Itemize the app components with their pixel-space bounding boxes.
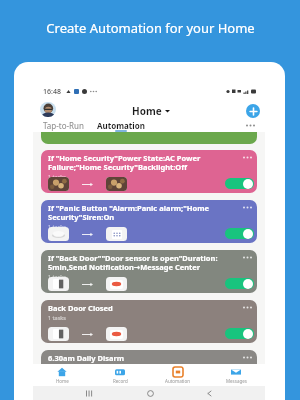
button[interactable]: If "Home Security"Power State:AC Power F… — [41, 150, 257, 193]
button[interactable]: More options — [243, 206, 252, 209]
staticText: If "Back Door""Door sensor is open"Durat… — [48, 253, 218, 272]
button[interactable]: More options — [243, 306, 252, 309]
staticText: Create Automation for your Home — [46, 19, 255, 37]
button[interactable]: More options — [243, 156, 252, 159]
button[interactable]: 6.30am Daily Disarm — [41, 350, 257, 364]
staticText: 1 tasks — [48, 173, 66, 180]
staticText: If "Home Security"Power State:AC Power F… — [48, 153, 223, 172]
button[interactable]: Toggle automation — [225, 278, 254, 289]
staticText: Messages — [226, 378, 247, 384]
staticText: Home — [132, 104, 162, 118]
staticText: Automation — [97, 120, 145, 131]
staticText: Back Door Closed — [48, 303, 113, 313]
button[interactable]: More options — [243, 256, 252, 259]
button[interactable]: If "Back Door""Door sensor is open"Durat… — [41, 250, 257, 293]
button[interactable]: Messages — [207, 367, 265, 384]
staticText: 1 tasks — [48, 273, 66, 280]
button[interactable]: Toggle automation — [225, 328, 254, 339]
button[interactable] — [41, 132, 257, 144]
button[interactable]: If "Panic Button "Alarm:Panic alarm;"Hom… — [41, 200, 257, 243]
button[interactable]: Home — [33, 367, 91, 384]
button[interactable]: Home — [132, 104, 170, 118]
staticText: If "Panic Button "Alarm:Panic alarm;"Hom… — [48, 203, 223, 222]
button[interactable]: More options — [243, 356, 252, 359]
button[interactable]: Add — [246, 104, 260, 118]
staticText: 1 tasks — [48, 314, 66, 321]
button[interactable]: Toggle automation — [225, 178, 254, 189]
button[interactable]: Automation — [97, 118, 145, 132]
button[interactable]: Toggle automation — [225, 228, 254, 239]
button[interactable]: Record — [91, 367, 149, 384]
button[interactable]: Profile — [40, 102, 56, 117]
button[interactable]: Back Door Closed — [41, 300, 257, 343]
staticText: Record — [113, 378, 128, 384]
button[interactable]: More — [244, 122, 257, 129]
staticText: 1 tasks — [48, 223, 66, 230]
button[interactable]: Automation — [149, 367, 207, 384]
staticText: Automation — [165, 378, 191, 384]
staticText: 16:48 — [43, 87, 61, 97]
button[interactable]: Tap-to-Run — [43, 118, 84, 132]
staticText: 6.30am Daily Disarm — [48, 353, 125, 363]
staticText: Tap-to-Run — [43, 120, 84, 131]
staticText: Home — [56, 378, 69, 384]
